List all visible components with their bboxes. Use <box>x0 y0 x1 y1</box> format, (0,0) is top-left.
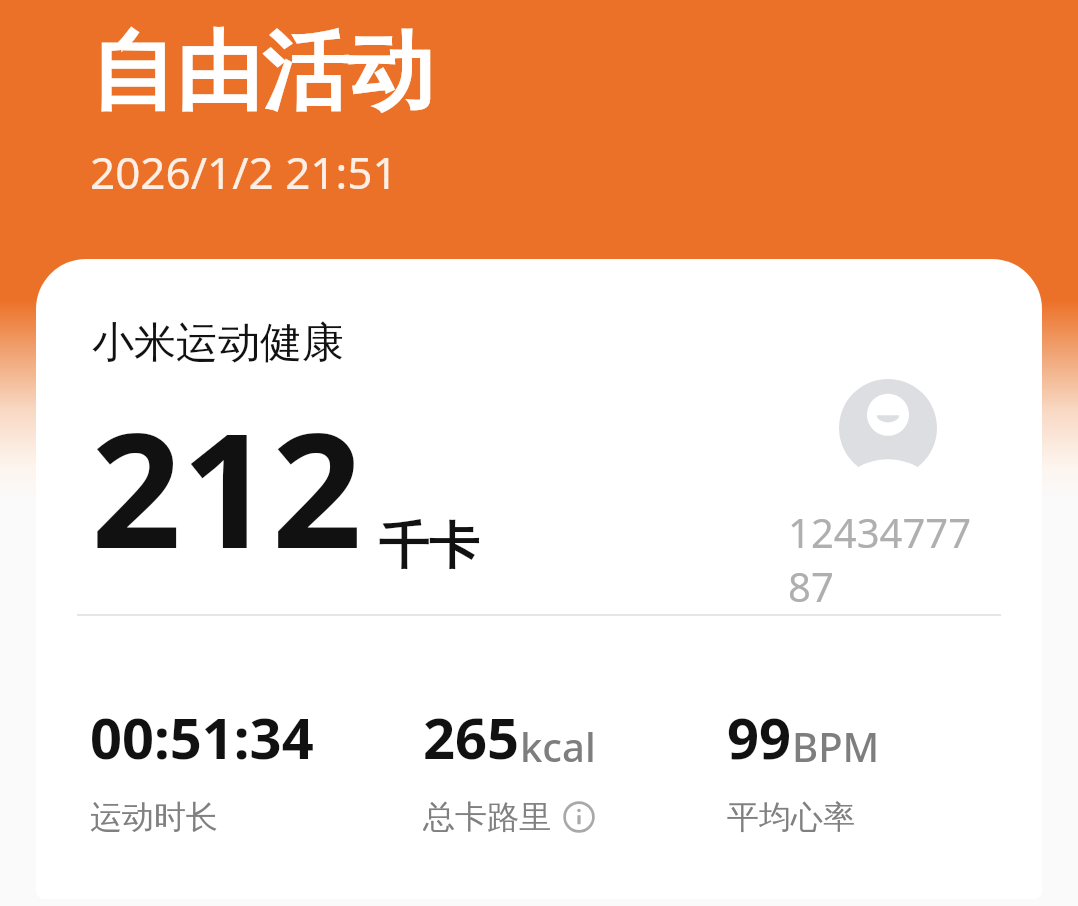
staticText: 1243477787 <box>788 505 988 613</box>
staticText: 2026/1/2 21:51 <box>90 142 398 202</box>
staticText: 212 <box>91 379 363 594</box>
button[interactable]: 00:51:34 <box>90 699 314 837</box>
staticText: 265 <box>423 699 520 775</box>
staticText: 小米运动健康 <box>92 317 344 370</box>
button[interactable]: User profile 1243477787 <box>788 379 988 613</box>
staticText: BPM <box>792 719 880 773</box>
staticText: 千卡 <box>379 515 479 578</box>
staticText: 总卡路里 <box>423 797 551 837</box>
staticText: 运动时长 <box>90 797 218 837</box>
button[interactable]: 99 <box>727 699 880 837</box>
staticText: 自由活动 <box>90 18 434 126</box>
button[interactable]: 265 <box>423 699 596 837</box>
staticText: 00:51:34 <box>90 699 314 775</box>
staticText: kcal <box>520 719 596 773</box>
staticText: 平均心率 <box>727 797 855 837</box>
staticText: 99 <box>727 699 792 775</box>
button[interactable]: 小米运动健康 <box>36 259 1042 899</box>
